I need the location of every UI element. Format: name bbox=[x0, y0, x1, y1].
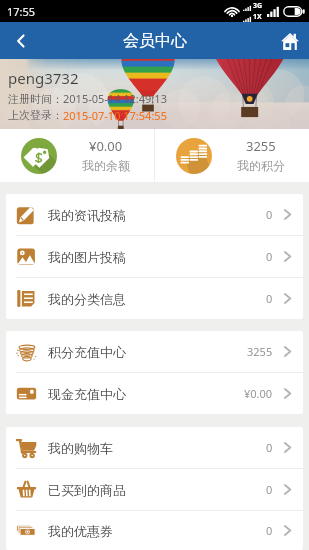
button[interactable]: 3255 bbox=[155, 129, 309, 182]
staticText: 3G bbox=[253, 1, 263, 11]
button[interactable]: 我的资讯投稿 bbox=[6, 194, 303, 235]
staticText: 17:55 bbox=[7, 4, 36, 19]
staticText: 现金充值中心 bbox=[48, 386, 126, 402]
button[interactable]: ¥0.00 bbox=[0, 129, 154, 182]
staticText: 会员中心 bbox=[123, 31, 187, 51]
staticText: 3255 bbox=[246, 137, 276, 155]
button[interactable]: 我的购物车 bbox=[6, 427, 303, 468]
button[interactable]: Back bbox=[0, 22, 41, 59]
button[interactable]: 已买到的商品 bbox=[6, 469, 303, 510]
staticText: peng3732 bbox=[8, 68, 79, 88]
staticText: 上次登录： bbox=[8, 108, 63, 122]
button[interactable]: Home bbox=[271, 22, 309, 59]
staticText: ¥0.00 bbox=[244, 386, 273, 401]
staticText: 我的积分 bbox=[237, 158, 285, 173]
staticText: 1X bbox=[253, 12, 262, 22]
staticText: 我的图片投稿 bbox=[48, 249, 126, 265]
staticText: 我的购物车 bbox=[48, 440, 113, 456]
staticText: 我的分类信息 bbox=[48, 291, 126, 307]
staticText: 我的余额 bbox=[82, 158, 130, 173]
button[interactable]: 我的图片投稿 bbox=[6, 236, 303, 277]
staticText: 0 bbox=[266, 207, 273, 222]
button[interactable]: 我的分类信息 bbox=[6, 278, 303, 319]
staticText: 已买到的商品 bbox=[48, 482, 126, 498]
button[interactable]: 积分充值中心 bbox=[6, 331, 303, 372]
staticText: 我的优惠券 bbox=[48, 523, 113, 539]
button[interactable]: 我的优惠券 bbox=[6, 511, 303, 550]
staticText: 0 bbox=[266, 291, 273, 306]
button[interactable]: 现金充值中心 bbox=[6, 373, 303, 414]
staticText: 我的资讯投稿 bbox=[48, 207, 126, 223]
staticText: 0 bbox=[266, 440, 273, 455]
staticText: 积分充值中心 bbox=[48, 344, 126, 360]
staticText: 0 bbox=[266, 523, 273, 538]
staticText: 0 bbox=[266, 249, 273, 264]
staticText: 0 bbox=[266, 482, 273, 497]
staticText: 3255 bbox=[247, 344, 273, 359]
staticText: 注册时间：2015-05-14 12:49:13 bbox=[8, 91, 167, 106]
staticText: 2015-07-10 17:54:55 bbox=[63, 108, 167, 123]
staticText: ¥0.00 bbox=[89, 137, 123, 155]
